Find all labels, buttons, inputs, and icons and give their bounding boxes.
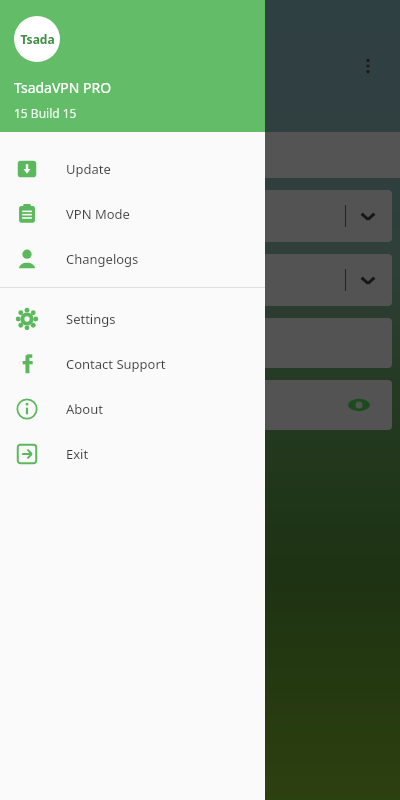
button[interactable]: More options <box>350 48 386 84</box>
button[interactable]: Show password <box>346 392 372 418</box>
button[interactable]: Contact Support <box>0 341 265 386</box>
button[interactable]: About <box>0 386 265 431</box>
button[interactable] <box>8 318 392 368</box>
button[interactable]: Settings <box>0 296 265 341</box>
button[interactable]: Dropdown <box>8 190 392 242</box>
button[interactable]: Exit <box>0 431 265 476</box>
button[interactable]: LOG <box>22 146 54 165</box>
staticText: VPN Mode <box>66 205 130 223</box>
staticText: TsadaVPN PRO <box>14 78 112 97</box>
staticText: Exit <box>66 445 89 463</box>
button[interactable]: Dropdown <box>8 254 392 306</box>
staticText: Settings <box>66 310 116 328</box>
button[interactable]: Update <box>0 146 265 191</box>
button[interactable]: Show password <box>8 380 392 430</box>
staticText: Changelogs <box>66 250 139 268</box>
staticText: Tsada <box>20 31 55 47</box>
button[interactable] <box>14 444 144 486</box>
button[interactable]: Changelogs <box>0 236 265 281</box>
staticText: Update <box>66 160 111 178</box>
staticText: About <box>66 400 103 418</box>
staticText: 15 Build 15 <box>14 105 77 121</box>
staticText: Contact Support <box>66 355 166 373</box>
button[interactable]: VPN Mode <box>0 191 265 236</box>
